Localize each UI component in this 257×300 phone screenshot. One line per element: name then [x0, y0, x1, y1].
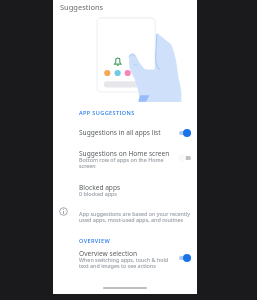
button[interactable]: Toggle	[178, 127, 196, 139]
button[interactable]: Toggle	[178, 252, 196, 264]
button[interactable]: Toggle	[178, 152, 196, 164]
staticText: 0 blocked apps	[79, 190, 117, 197]
staticText: Blocked apps	[79, 183, 121, 192]
staticText: OVERVIEW	[79, 237, 111, 245]
staticText: App suggestions are based on your recent…	[79, 210, 190, 224]
staticText: Suggestions in all apps list	[79, 128, 161, 137]
staticText: When switching apps, touch & hold text a…	[79, 256, 169, 270]
staticText: Bottom row of apps on the Home screen	[79, 156, 164, 170]
staticText: Suggestions	[60, 2, 104, 12]
staticText: Suggestions on Home screen	[79, 149, 170, 158]
staticText: APP SUGGESTIONS	[79, 109, 135, 117]
staticText: Overview selection	[79, 249, 138, 258]
